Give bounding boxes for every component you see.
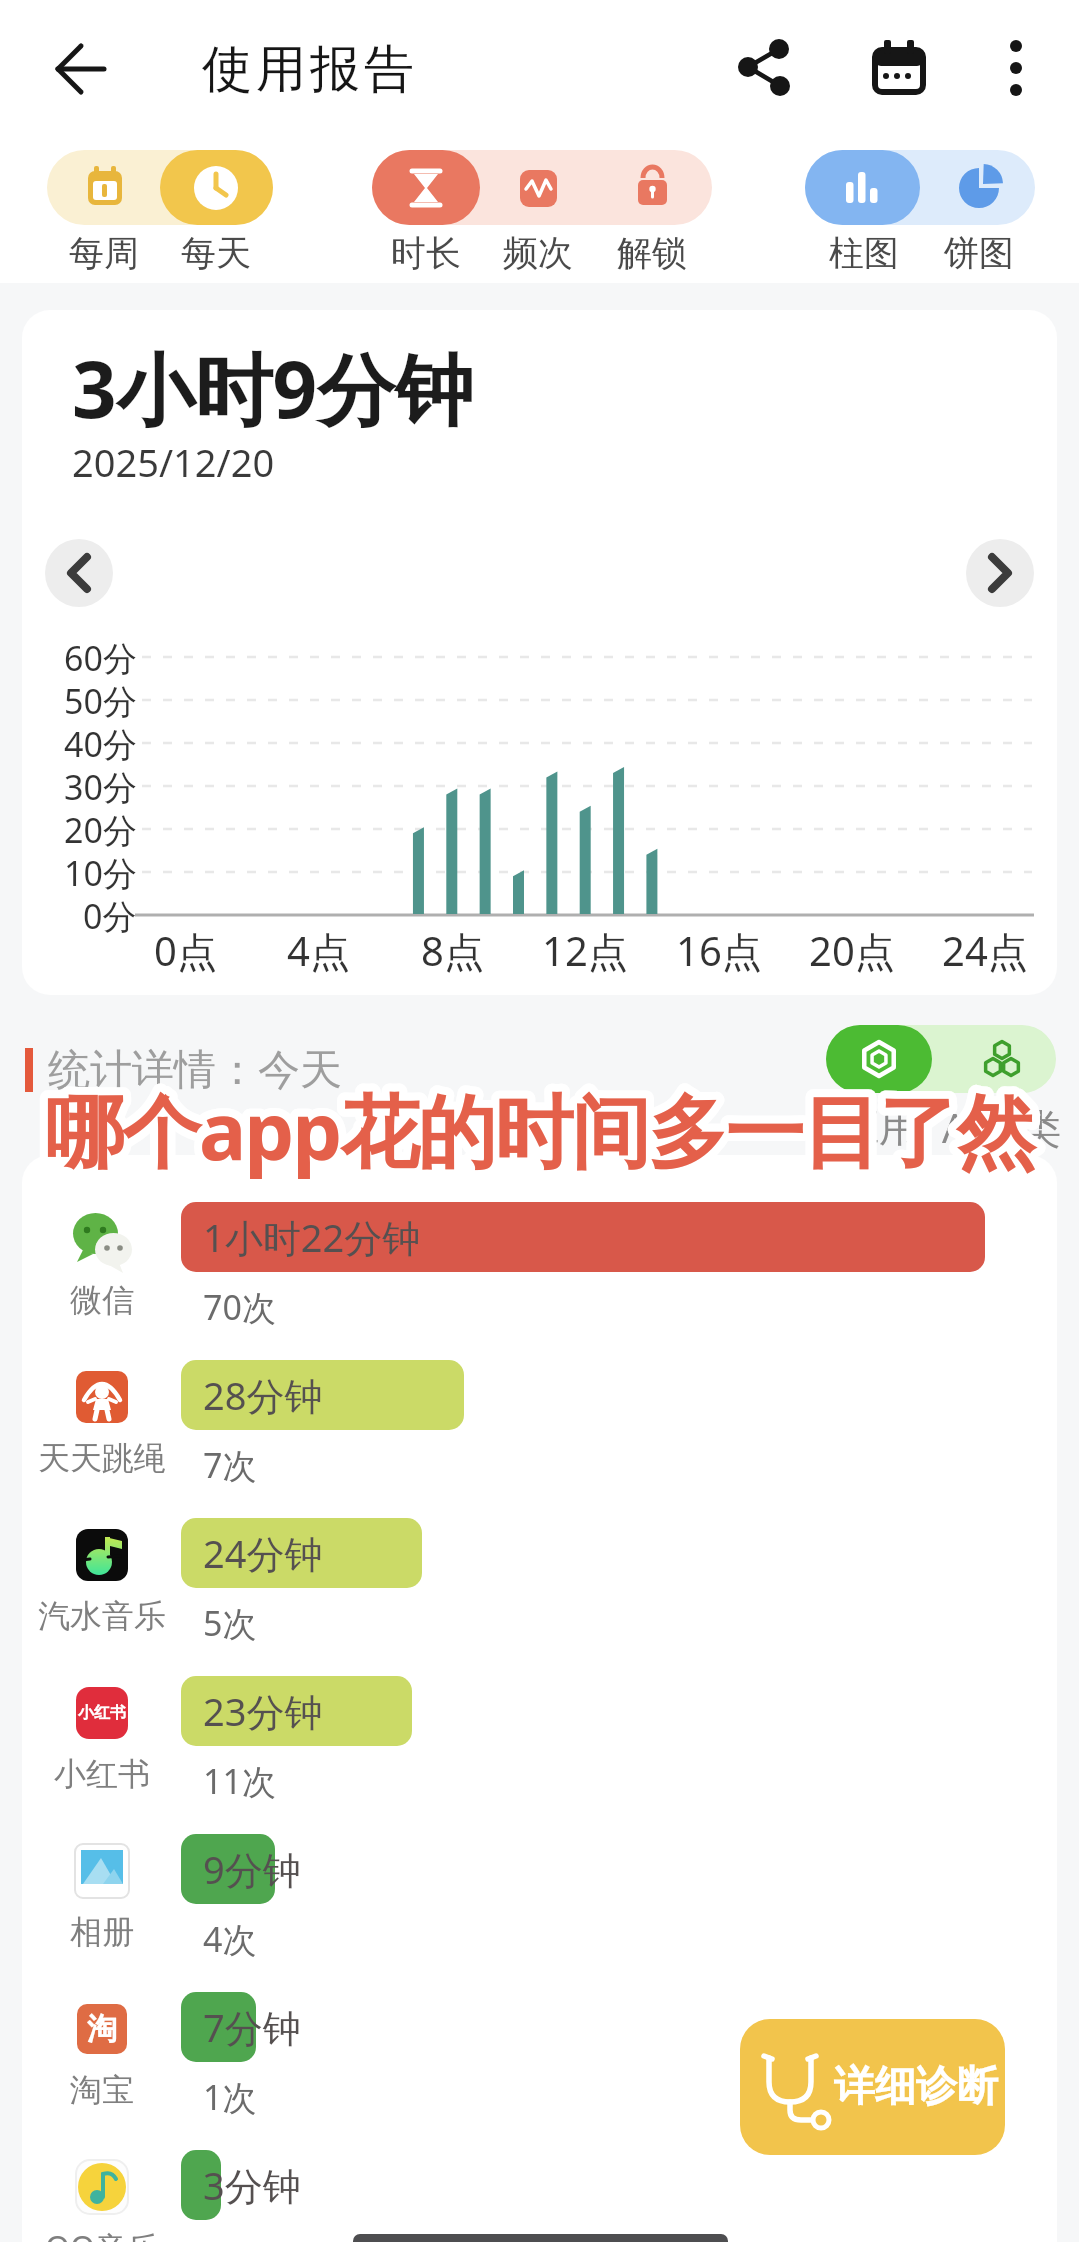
staticText: 哪个app花的时间多一目了然 [45,1076,1034,1184]
staticText: 30分 [64,764,137,810]
button[interactable] [826,1025,932,1093]
staticText: 9分钟 [203,1843,301,1895]
staticText: 60分 [64,635,137,681]
staticText: 40分 [64,721,137,767]
staticText: 每周 [69,231,139,275]
staticText: 5次 [203,1600,257,1646]
staticText: 8点 [421,923,484,978]
staticText: 10分 [64,850,137,896]
staticText: 时长 [391,231,461,275]
staticText: AI分类 [942,1100,1062,1155]
staticText: 12点 [542,923,628,978]
staticText: 1次 [203,2074,257,2120]
staticText: 使用报告 [200,38,416,101]
staticText: 微信 [70,1280,134,1320]
staticText: 哪个app花的时间多一目了然 [45,1076,1034,1184]
button[interactable] [45,539,113,607]
staticText: 20分 [64,807,137,853]
staticText: 24分钟 [203,1527,323,1579]
staticText: 16点 [676,923,762,978]
staticText: 11次 [203,1758,276,1804]
button[interactable] [990,38,1042,98]
staticText: 23分钟 [203,1685,323,1737]
button[interactable] [160,150,273,272]
button[interactable] [735,38,795,98]
staticText: 应用 [839,1102,919,1152]
staticText: 频次 [503,231,573,275]
staticText: 0点 [154,923,217,978]
button[interactable] [865,38,931,98]
staticText: 3小时9分钟 [72,335,474,442]
staticText: 7分钟 [203,2001,301,2053]
button[interactable] [47,150,160,272]
staticText: 70次 [203,1284,276,1330]
staticText: 4次 [203,1916,257,1962]
staticText: 柱图 [829,231,899,275]
staticText: 淘 [87,2010,117,2048]
button[interactable] [932,1025,1056,1093]
button[interactable] [920,150,1035,272]
staticText: 0分 [83,893,137,939]
staticText: 淘宝 [70,2070,134,2110]
staticText: QQ音乐 [45,2226,159,2242]
staticText: 4点 [287,923,350,978]
staticText: 24点 [942,923,1028,978]
staticText: 3分钟 [203,2159,301,2211]
button[interactable] [805,150,920,272]
staticText: 50分 [64,678,137,724]
staticText: 20点 [809,923,895,978]
staticText: 小红书 [54,1754,150,1794]
staticText: 饼图 [944,231,1014,275]
staticText: 汽水音乐 [38,1596,166,1636]
button[interactable] [966,539,1034,607]
button[interactable] [740,2019,1005,2155]
staticText: 详细诊断 [834,2061,998,2113]
staticText: 每天 [181,231,251,275]
button[interactable] [480,150,596,272]
staticText: 天天跳绳 [38,1438,166,1478]
staticText: 小红书 [78,1703,126,1723]
staticText: 统计详情：今天 [48,1044,342,1097]
staticText: 7次 [203,1442,257,1488]
button[interactable] [372,150,480,272]
staticText: 解锁 [617,231,687,275]
staticText: 1小时22分钟 [203,1211,421,1263]
button[interactable] [596,150,712,272]
staticText: 2025/12/20 [72,436,275,488]
staticText: 相册 [70,1912,134,1952]
staticText: 28分钟 [203,1369,323,1421]
button[interactable] [40,40,104,100]
